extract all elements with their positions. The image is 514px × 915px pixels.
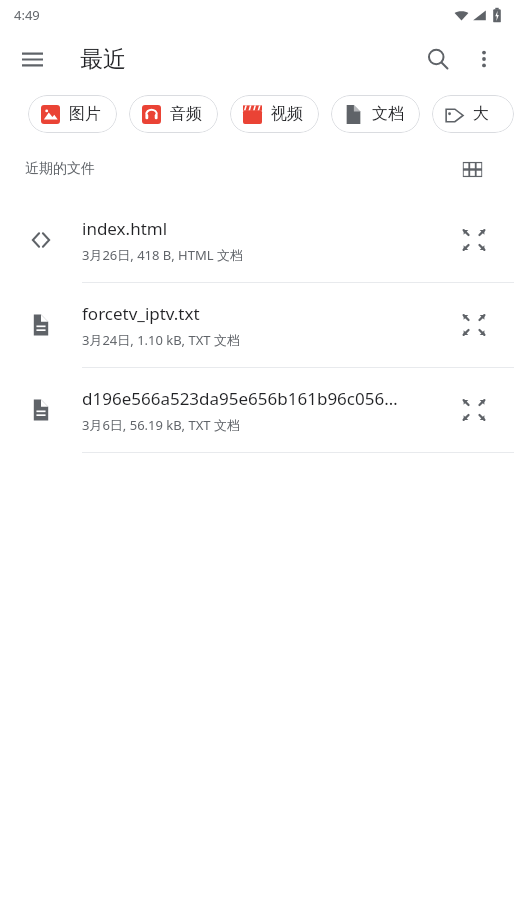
- button[interactable]: 图片: [28, 95, 117, 133]
- button[interactable]: 大型文件: [432, 95, 514, 133]
- staticText: 视频: [271, 104, 303, 124]
- staticText: 音频: [170, 104, 202, 124]
- staticText: 4:49: [14, 6, 40, 24]
- staticText: 图片: [69, 104, 101, 124]
- staticText: 近期的文件: [25, 160, 95, 178]
- button[interactable]: Expand: [452, 218, 496, 262]
- staticText: index.html: [82, 217, 168, 240]
- button[interactable]: d196e566a523da95e656b161b96c056…: [0, 368, 514, 452]
- button[interactable]: 文档: [331, 95, 420, 133]
- staticText: 3月26日, 418 B, HTML 文档: [82, 246, 243, 264]
- button[interactable]: 音频: [129, 95, 218, 133]
- staticText: d196e566a523da95e656b161b96c056…: [82, 387, 398, 410]
- button[interactable]: Menu: [10, 37, 54, 81]
- button[interactable]: index.html: [0, 198, 514, 282]
- staticText: 大型文件: [473, 104, 498, 124]
- staticText: forcetv_iptv.txt: [82, 302, 200, 325]
- button[interactable]: Search: [414, 35, 462, 83]
- button[interactable]: 视频: [230, 95, 319, 133]
- staticText: 3月24日, 1.10 kB, TXT 文档: [82, 331, 240, 349]
- staticText: 3月6日, 56.19 kB, TXT 文档: [82, 416, 240, 434]
- button[interactable]: More options: [462, 37, 506, 81]
- button[interactable]: forcetv_iptv.txt: [0, 283, 514, 367]
- staticText: 文档: [372, 104, 404, 124]
- button[interactable]: Expand: [452, 388, 496, 432]
- button[interactable]: Grid view: [452, 149, 492, 189]
- staticText: 最近: [80, 45, 126, 74]
- button[interactable]: Expand: [452, 303, 496, 347]
